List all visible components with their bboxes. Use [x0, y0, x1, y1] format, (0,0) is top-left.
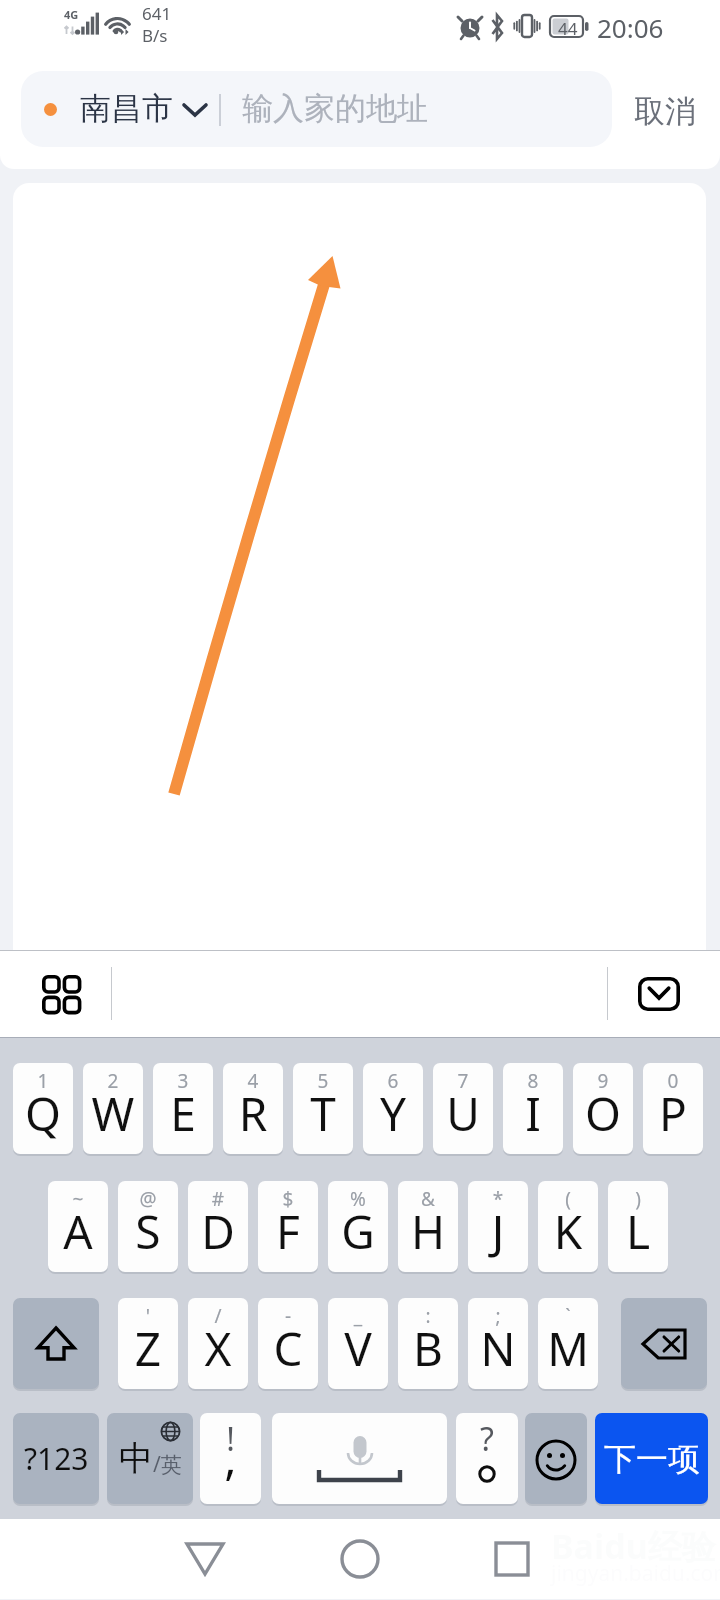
button[interactable]: 8	[503, 1063, 563, 1154]
staticText: M	[538, 1317, 598, 1380]
button[interactable]: 9	[573, 1063, 633, 1154]
staticText: Y	[363, 1082, 423, 1145]
button[interactable]: ?123	[13, 1413, 99, 1504]
button[interactable]: 3	[153, 1063, 213, 1154]
staticText: '	[118, 1303, 178, 1329]
button[interactable]: '	[118, 1298, 178, 1389]
button[interactable]: Keyboard layouts	[26, 961, 93, 1027]
button[interactable]: *	[468, 1181, 528, 1272]
button[interactable]: Shift	[13, 1298, 99, 1389]
staticText: 取消	[634, 92, 696, 131]
staticText: N	[468, 1317, 528, 1380]
button[interactable]: )	[608, 1181, 668, 1272]
staticText: W	[83, 1082, 143, 1145]
button[interactable]: Back	[165, 1529, 245, 1589]
staticText: 2	[83, 1068, 143, 1094]
button[interactable]: &	[398, 1181, 458, 1272]
staticText: B/s	[142, 24, 168, 47]
button[interactable]: Space	[272, 1413, 447, 1504]
button[interactable]: 取消	[626, 84, 704, 138]
staticText: #	[188, 1186, 248, 1212]
button[interactable]: /	[188, 1298, 248, 1389]
button[interactable]: 中	[107, 1413, 193, 1504]
staticText: 4G	[64, 7, 79, 22]
button[interactable]: Hide keyboard	[625, 965, 693, 1023]
staticText: ?	[456, 1417, 518, 1461]
button[interactable]: `	[538, 1298, 598, 1389]
button[interactable]: ;	[468, 1298, 528, 1389]
button[interactable]: Recents	[472, 1529, 552, 1589]
staticText: G	[328, 1200, 388, 1263]
staticText: $	[258, 1186, 318, 1212]
button[interactable]: 1	[13, 1063, 73, 1154]
staticText: -	[258, 1303, 318, 1329]
button[interactable]: Emoji	[525, 1413, 587, 1504]
button[interactable]: ?	[456, 1413, 518, 1504]
button[interactable]: (	[538, 1181, 598, 1272]
staticText: Z	[118, 1317, 178, 1380]
staticText: ~	[48, 1186, 108, 1212]
staticText: E	[153, 1082, 213, 1145]
staticText: O	[573, 1082, 633, 1145]
button[interactable]: @	[118, 1181, 178, 1272]
staticText: J	[468, 1200, 528, 1263]
staticText: R	[223, 1082, 283, 1145]
staticText: Q	[13, 1082, 73, 1145]
staticText: B	[398, 1317, 458, 1380]
button[interactable]: #	[188, 1181, 248, 1272]
button[interactable]: 南昌市	[21, 71, 612, 147]
staticText: S	[118, 1200, 178, 1263]
staticText: 9	[573, 1068, 633, 1094]
staticText: F	[258, 1200, 318, 1263]
staticText: ?123	[24, 1438, 89, 1479]
button[interactable]: Home	[320, 1529, 400, 1589]
staticText: 输入家的地址	[242, 89, 428, 128]
staticText: 5	[293, 1068, 353, 1094]
button[interactable]: $	[258, 1181, 318, 1272]
staticText: /	[188, 1303, 248, 1329]
staticText: 南昌市	[80, 89, 173, 128]
button[interactable]: -	[258, 1298, 318, 1389]
staticText: ;	[468, 1303, 528, 1329]
button[interactable]: Backspace	[621, 1298, 707, 1389]
button[interactable]: ~	[48, 1181, 108, 1272]
button[interactable]: 7	[433, 1063, 493, 1154]
button[interactable]: %	[328, 1181, 388, 1272]
staticText: T	[293, 1082, 353, 1145]
staticText: K	[538, 1200, 598, 1263]
staticText: 8	[503, 1068, 563, 1094]
staticText: 7	[433, 1068, 493, 1094]
staticText: %	[328, 1186, 388, 1212]
staticText: :	[398, 1303, 458, 1329]
staticText: 0	[643, 1068, 703, 1094]
staticText: 641	[142, 2, 172, 25]
button[interactable]: 下一项	[595, 1413, 708, 1504]
button[interactable]: !	[200, 1413, 261, 1504]
staticText: U	[433, 1082, 493, 1145]
staticText: /英	[153, 1450, 182, 1479]
staticText: 4	[223, 1068, 283, 1094]
staticText: @	[118, 1186, 178, 1212]
staticText: I	[503, 1082, 563, 1145]
staticText: (	[538, 1186, 598, 1212]
button[interactable]: 6	[363, 1063, 423, 1154]
staticText: _	[328, 1303, 388, 1329]
staticText: C	[258, 1317, 318, 1380]
staticText: V	[328, 1317, 388, 1380]
button[interactable]: 4	[223, 1063, 283, 1154]
button[interactable]: 2	[83, 1063, 143, 1154]
staticText: D	[188, 1200, 248, 1263]
staticText: 6	[363, 1068, 423, 1094]
staticText: ,	[200, 1426, 261, 1489]
button[interactable]: 5	[293, 1063, 353, 1154]
staticText: )	[608, 1186, 668, 1212]
staticText: 3	[153, 1068, 213, 1094]
staticText: !	[200, 1417, 261, 1461]
button[interactable]: _	[328, 1298, 388, 1389]
staticText: P	[643, 1082, 703, 1145]
button[interactable]: :	[398, 1298, 458, 1389]
staticText: *	[468, 1186, 528, 1212]
button[interactable]: 0	[643, 1063, 703, 1154]
